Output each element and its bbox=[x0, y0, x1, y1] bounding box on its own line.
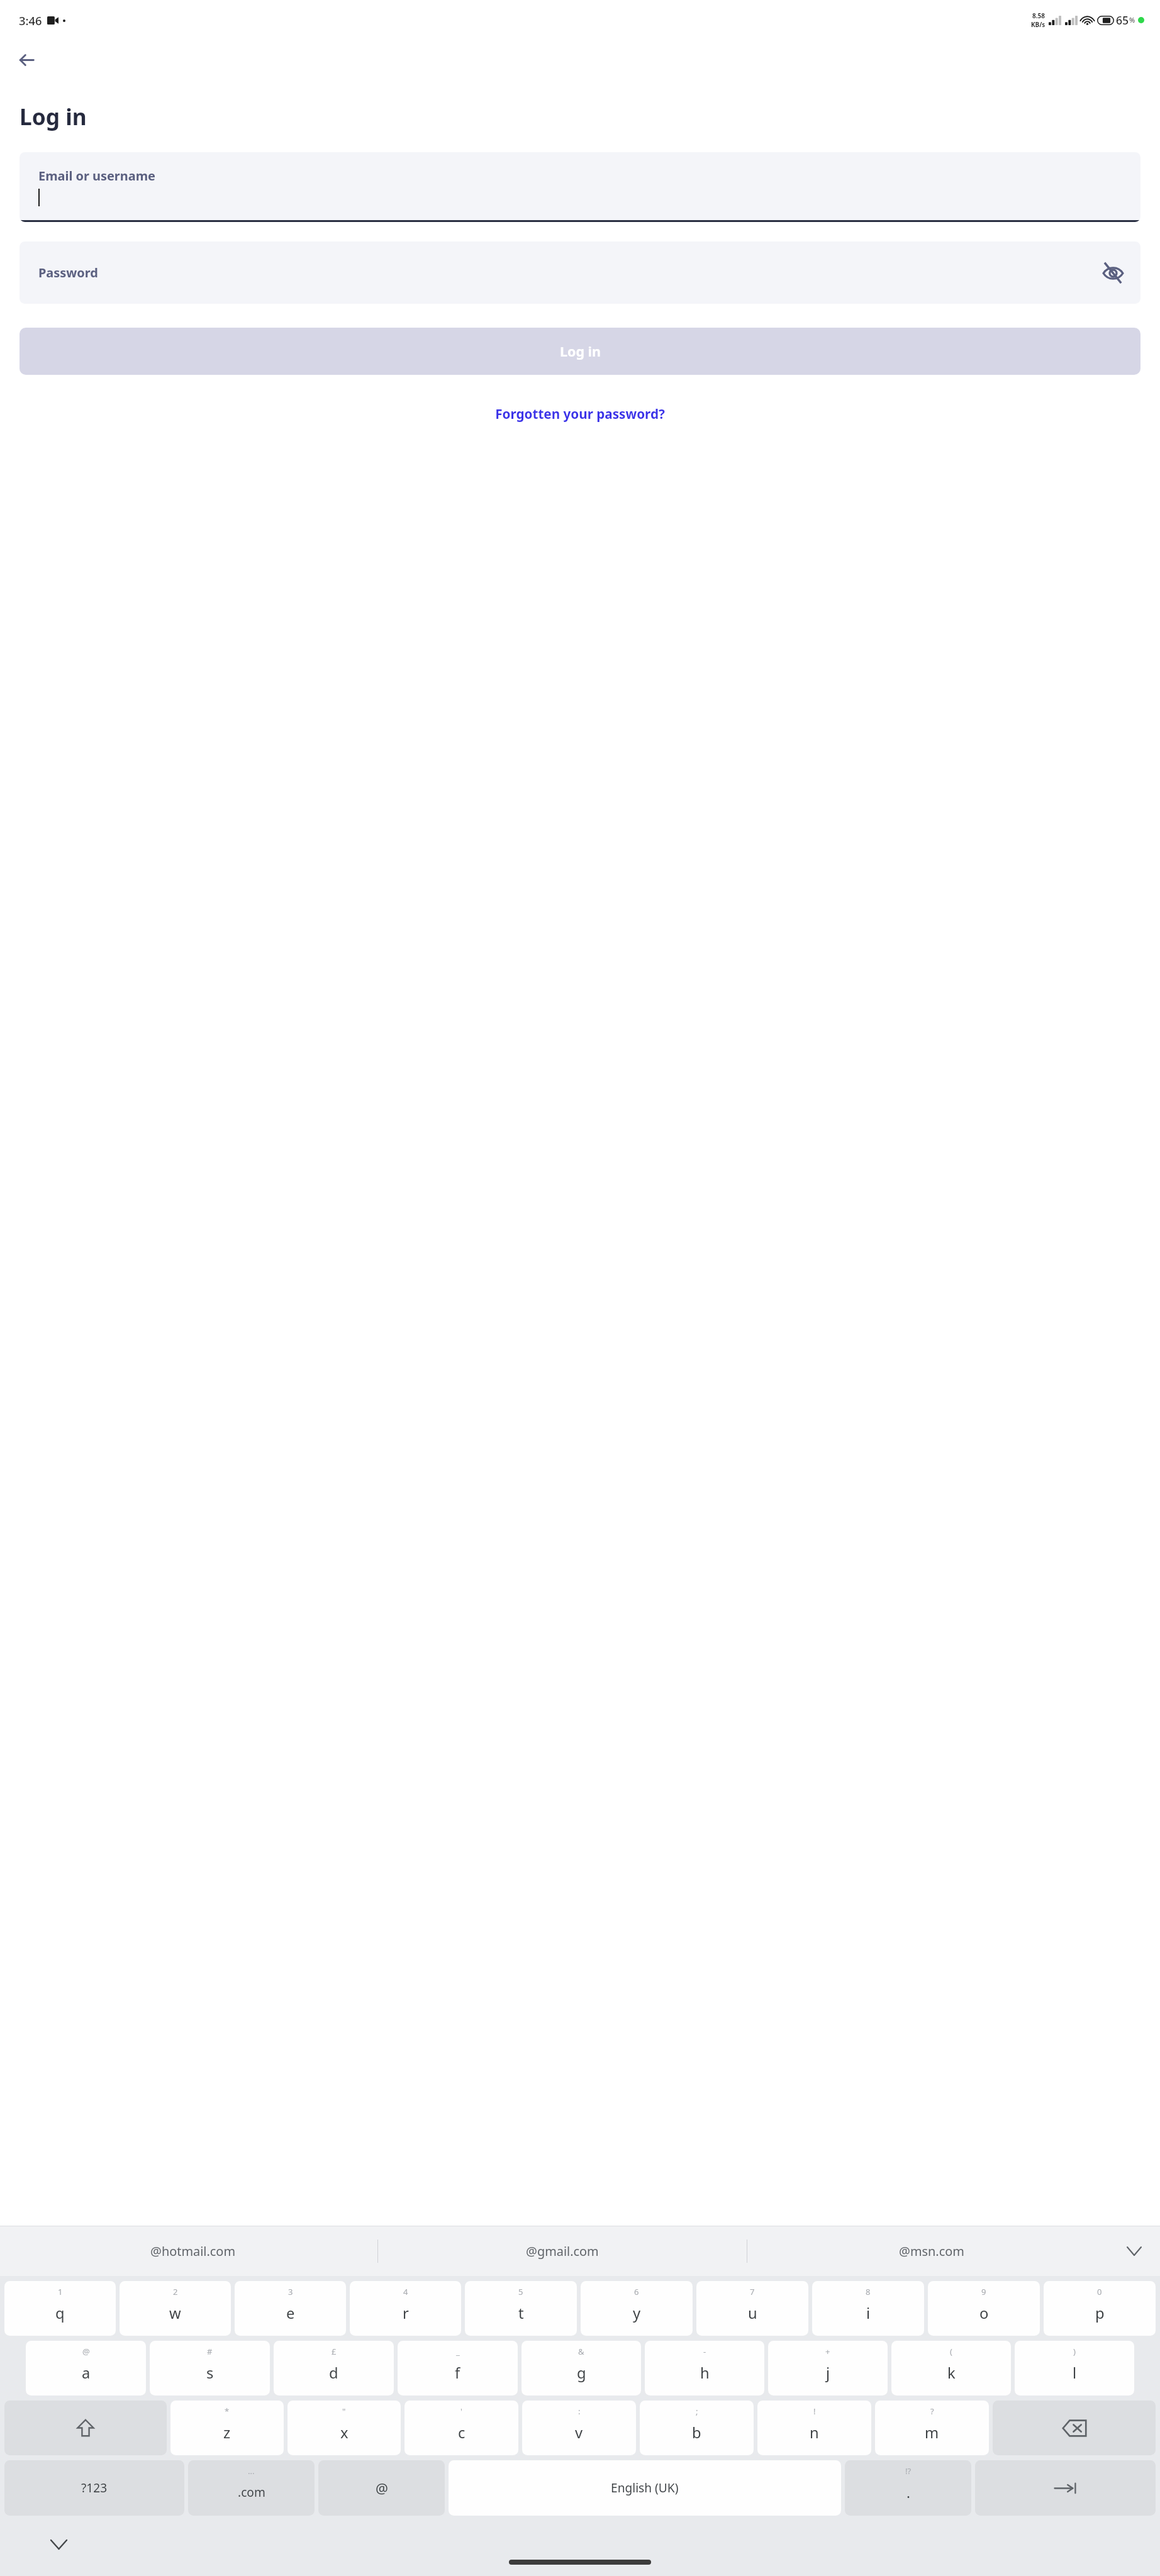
staticText: u bbox=[748, 2303, 757, 2323]
button[interactable]: @ bbox=[318, 2460, 445, 2516]
button[interactable]: Back bbox=[12, 45, 41, 74]
button[interactable]: 2 bbox=[120, 2281, 231, 2336]
button[interactable]: " bbox=[287, 2401, 401, 2455]
staticText: .com bbox=[238, 2484, 265, 2501]
staticText: ' bbox=[460, 2406, 462, 2417]
button[interactable]: ... bbox=[188, 2460, 315, 2516]
staticText: z bbox=[223, 2423, 231, 2443]
staticText: Email or username bbox=[38, 167, 155, 184]
staticText: ?123 bbox=[81, 2480, 108, 2496]
button[interactable]: @gmail.com bbox=[378, 2226, 747, 2276]
staticText: + bbox=[825, 2346, 830, 2357]
staticText: n bbox=[810, 2423, 819, 2443]
staticText: 6 bbox=[634, 2286, 639, 2297]
staticText: 65 bbox=[1116, 13, 1129, 28]
button[interactable]: # bbox=[150, 2341, 270, 2396]
button[interactable]: @ bbox=[26, 2341, 146, 2396]
staticText: Log in bbox=[560, 342, 601, 360]
button[interactable]: & bbox=[521, 2341, 641, 2396]
staticText: o bbox=[979, 2303, 989, 2323]
button[interactable]: !? bbox=[845, 2460, 971, 2516]
staticText: q bbox=[55, 2303, 65, 2323]
staticText: a bbox=[82, 2363, 91, 2383]
button[interactable]: @hotmail.com bbox=[8, 2226, 377, 2276]
button[interactable]: ' bbox=[404, 2401, 518, 2455]
staticText: @ bbox=[376, 2479, 388, 2497]
staticText: d bbox=[329, 2363, 338, 2383]
staticText: 4 bbox=[403, 2286, 408, 2297]
button[interactable]: Expand suggestions bbox=[1116, 2226, 1152, 2276]
button[interactable]: 6 bbox=[581, 2281, 693, 2336]
staticText: !? bbox=[905, 2465, 912, 2477]
button[interactable]: * bbox=[170, 2401, 284, 2455]
staticText: @hotmail.com bbox=[150, 2243, 236, 2260]
button[interactable]: English (UK) bbox=[449, 2460, 841, 2516]
button[interactable]: 7 bbox=[696, 2281, 808, 2336]
staticText: t bbox=[518, 2303, 524, 2323]
staticText: 8 bbox=[866, 2286, 871, 2297]
staticText: e bbox=[286, 2303, 295, 2323]
staticText: @msn.com bbox=[899, 2243, 964, 2260]
button[interactable]: ; bbox=[640, 2401, 754, 2455]
staticText: Password bbox=[38, 264, 98, 281]
button[interactable]: ) bbox=[1015, 2341, 1134, 2396]
staticText: y bbox=[633, 2303, 641, 2323]
button[interactable]: 5 bbox=[465, 2281, 577, 2336]
button[interactable]: 9 bbox=[928, 2281, 1040, 2336]
staticText: _ bbox=[456, 2346, 460, 2357]
staticText: 1 bbox=[58, 2286, 63, 2297]
staticText: - bbox=[703, 2346, 706, 2357]
button[interactable]: - bbox=[645, 2341, 764, 2396]
staticText: . bbox=[906, 2483, 910, 2502]
button[interactable]: 0 bbox=[1044, 2281, 1156, 2336]
staticText: h bbox=[700, 2363, 710, 2383]
staticText: r bbox=[403, 2303, 409, 2323]
button[interactable]: Backspace bbox=[993, 2401, 1156, 2455]
button[interactable]: : bbox=[522, 2401, 636, 2455]
staticText: p bbox=[1095, 2303, 1105, 2323]
button[interactable]: ?123 bbox=[4, 2460, 184, 2516]
button[interactable]: Forgotten your password? bbox=[490, 402, 670, 426]
button[interactable]: 4 bbox=[350, 2281, 461, 2336]
staticText: ( bbox=[950, 2346, 952, 2357]
staticText: & bbox=[578, 2346, 584, 2357]
staticText: KB/s bbox=[1031, 20, 1046, 29]
staticText: English (UK) bbox=[611, 2480, 679, 2496]
button[interactable]: ! bbox=[757, 2401, 871, 2455]
button[interactable]: 1 bbox=[4, 2281, 116, 2336]
button[interactable]: ? bbox=[875, 2401, 989, 2455]
staticText: 7 bbox=[750, 2286, 755, 2297]
staticText: Forgotten your password? bbox=[495, 405, 665, 423]
staticText: s bbox=[206, 2363, 214, 2383]
staticText: : bbox=[578, 2406, 581, 2417]
button[interactable]: 8 bbox=[812, 2281, 924, 2336]
staticText: " bbox=[342, 2406, 346, 2417]
button[interactable]: Email or username bbox=[20, 152, 1140, 222]
button[interactable]: Password bbox=[20, 241, 1140, 304]
button[interactable]: 3 bbox=[235, 2281, 346, 2336]
staticText: b bbox=[692, 2423, 701, 2443]
staticText: w bbox=[169, 2303, 181, 2323]
button[interactable]: _ bbox=[398, 2341, 518, 2396]
staticText: 3:46 bbox=[19, 13, 42, 28]
staticText: * bbox=[225, 2406, 230, 2417]
staticText: @gmail.com bbox=[526, 2243, 599, 2260]
staticText: ) bbox=[1073, 2346, 1076, 2357]
button[interactable]: Show password bbox=[1100, 260, 1126, 286]
staticText: l bbox=[1073, 2363, 1077, 2383]
staticText: £ bbox=[332, 2346, 337, 2357]
staticText: x bbox=[340, 2423, 349, 2443]
staticText: # bbox=[207, 2346, 213, 2357]
button[interactable]: ( bbox=[891, 2341, 1011, 2396]
staticText: 3 bbox=[288, 2286, 293, 2297]
button[interactable]: Hide keyboard bbox=[45, 2534, 72, 2554]
button[interactable]: Shift bbox=[4, 2401, 167, 2455]
staticText: 2 bbox=[173, 2286, 178, 2297]
staticText: f bbox=[455, 2363, 460, 2383]
button[interactable]: + bbox=[768, 2341, 888, 2396]
button[interactable]: £ bbox=[274, 2341, 394, 2396]
staticText: 5 bbox=[518, 2286, 523, 2297]
button[interactable]: @msn.com bbox=[747, 2226, 1116, 2276]
button[interactable]: Next bbox=[975, 2460, 1156, 2516]
